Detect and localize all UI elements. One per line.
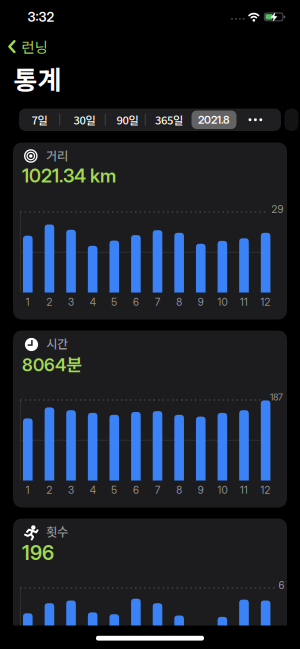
staticText: 통계 <box>13 60 61 97</box>
staticText: 1021.34 km <box>22 164 116 187</box>
staticText: 런닝 <box>21 36 47 57</box>
staticText: 분 <box>66 351 82 376</box>
staticText: 6 <box>133 296 139 308</box>
staticText: 9 <box>198 484 204 496</box>
staticText: 5 <box>111 296 117 308</box>
staticText: 30일 <box>73 112 95 128</box>
staticText: 196 <box>22 540 54 565</box>
staticText: 횟수 <box>46 522 68 540</box>
staticText: 7 <box>155 296 160 308</box>
staticText: 365일 <box>155 112 183 128</box>
staticText: 8064 <box>22 354 66 375</box>
staticText: 1 <box>26 296 30 308</box>
staticText: 6 <box>133 484 139 496</box>
staticText: 12 <box>261 296 271 308</box>
staticText: 7일 <box>31 112 47 128</box>
staticText: 6 <box>278 579 284 591</box>
staticText: 2 <box>46 296 52 308</box>
staticText: 시간 <box>46 334 68 352</box>
staticText: 8 <box>176 296 182 308</box>
staticText: 90일 <box>116 112 138 128</box>
staticText: 4 <box>90 296 96 308</box>
staticText: 거리 <box>46 146 68 164</box>
staticText: 11 <box>240 484 248 496</box>
staticText: 8 <box>176 484 182 496</box>
staticText: 3 <box>68 484 74 496</box>
staticText: 12 <box>261 484 271 496</box>
staticText: 4 <box>90 484 96 496</box>
staticText: 3 <box>68 296 74 308</box>
staticText: 2021.8 <box>198 113 230 126</box>
staticText: 5 <box>111 484 117 496</box>
staticText: 2 <box>46 484 52 496</box>
staticText: 3:32 <box>27 9 54 25</box>
staticText: 7 <box>155 484 160 496</box>
staticText: 29 <box>271 203 283 215</box>
staticText: 187 <box>270 392 283 403</box>
staticText: 9 <box>198 296 204 308</box>
staticText: 11 <box>240 296 248 308</box>
staticText: 10 <box>217 296 227 308</box>
staticText: 10 <box>217 484 227 496</box>
staticText: 1 <box>26 484 30 496</box>
